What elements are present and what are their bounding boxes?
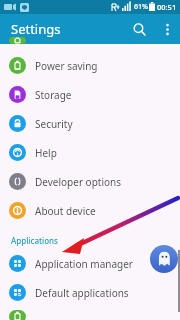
- staticText: Applications: [11, 235, 58, 246]
- button[interactable]: Assistant bubble: [150, 245, 178, 273]
- button[interactable]: Power saving: [0, 51, 180, 80]
- staticText: Application manager: [35, 257, 133, 271]
- staticText: Help: [35, 146, 57, 160]
- button[interactable]: Developer options: [0, 167, 180, 196]
- staticText: Default applications: [35, 286, 129, 300]
- button[interactable]: Storage: [0, 80, 180, 109]
- button[interactable]: Default applications: [0, 278, 180, 307]
- button[interactable]: About device: [0, 196, 180, 225]
- button[interactable]: Search: [124, 14, 154, 44]
- button[interactable]: Help: [0, 138, 180, 167]
- staticText: 00:51: [157, 2, 177, 12]
- staticText: 61%: [134, 2, 148, 12]
- staticText: About device: [35, 204, 96, 218]
- button[interactable]: Application manager: [0, 249, 180, 278]
- button[interactable]: Security: [0, 109, 180, 138]
- button[interactable]: [0, 307, 180, 320]
- staticText: Power saving: [35, 59, 98, 73]
- staticText: Security: [35, 117, 73, 131]
- button[interactable]: More options: [154, 16, 180, 42]
- staticText: Developer options: [35, 175, 122, 189]
- staticText: Settings: [11, 20, 61, 38]
- staticText: Storage: [35, 88, 72, 102]
